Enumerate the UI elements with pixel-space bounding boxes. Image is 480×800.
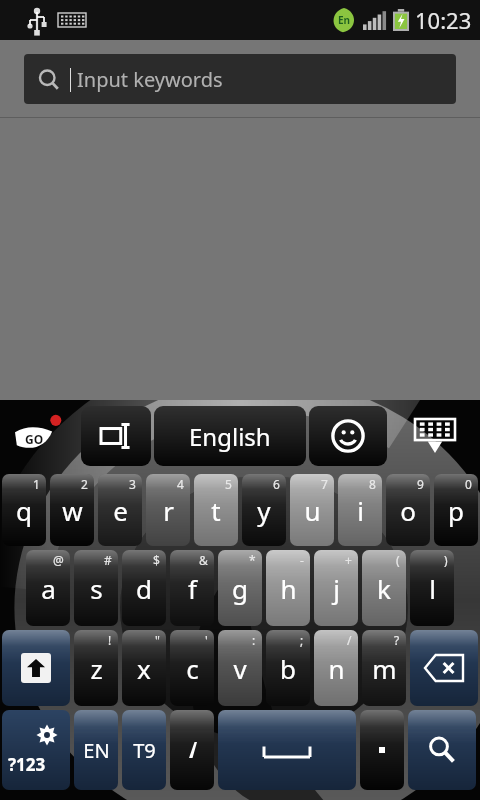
button[interactable]: 6 bbox=[242, 474, 286, 546]
staticText: c bbox=[186, 651, 199, 686]
staticText: " bbox=[155, 632, 160, 648]
staticText: i bbox=[357, 493, 364, 528]
staticText: d bbox=[136, 571, 152, 606]
staticText: e bbox=[113, 493, 128, 528]
staticText: 1 bbox=[33, 476, 40, 492]
staticText: 9 bbox=[417, 476, 424, 492]
button[interactable]: ? bbox=[362, 630, 406, 706]
staticText: 4 bbox=[177, 476, 184, 492]
staticText: 5 bbox=[225, 476, 232, 492]
staticText: ) bbox=[444, 552, 448, 568]
button[interactable]: Search bbox=[408, 710, 476, 790]
button[interactable]: GO keyboard bbox=[0, 400, 78, 472]
staticText: m bbox=[372, 651, 397, 686]
button[interactable]: 1 bbox=[2, 474, 46, 546]
button[interactable]: English bbox=[154, 406, 306, 466]
staticText: $ bbox=[153, 552, 160, 568]
button[interactable]: 8 bbox=[338, 474, 382, 546]
button[interactable]: ' bbox=[170, 630, 214, 706]
button[interactable]: Shift bbox=[2, 630, 70, 706]
button[interactable]: @ bbox=[26, 550, 70, 626]
button[interactable]: $ bbox=[122, 550, 166, 626]
staticText: u bbox=[304, 493, 321, 528]
staticText: English bbox=[189, 420, 271, 453]
staticText: 6 bbox=[273, 476, 280, 492]
button[interactable]: EN bbox=[74, 710, 118, 790]
staticText: ; bbox=[300, 632, 304, 648]
button[interactable]: 4 bbox=[146, 474, 190, 546]
staticText: * bbox=[249, 552, 256, 568]
staticText: ? bbox=[394, 632, 400, 648]
staticText: f bbox=[188, 571, 197, 606]
button[interactable]: # bbox=[74, 550, 118, 626]
button[interactable]: Space bbox=[218, 710, 356, 790]
staticText: y bbox=[257, 493, 271, 528]
staticText: Input keywords bbox=[77, 66, 223, 93]
button[interactable]: Input keywords bbox=[24, 54, 456, 104]
button[interactable]: 9 bbox=[386, 474, 430, 546]
staticText: k bbox=[377, 571, 391, 606]
button[interactable]: / bbox=[314, 630, 358, 706]
staticText: q bbox=[16, 493, 32, 528]
button[interactable]: Emoji bbox=[309, 406, 387, 466]
staticText: : bbox=[252, 632, 256, 648]
button[interactable]: + bbox=[314, 550, 358, 626]
staticText: ?123 bbox=[8, 753, 46, 776]
staticText: 3 bbox=[129, 476, 136, 492]
button[interactable]: Layout bbox=[81, 406, 151, 466]
button[interactable]: ) bbox=[410, 550, 454, 626]
button[interactable]: 3 bbox=[98, 474, 142, 546]
button[interactable]: - bbox=[266, 550, 310, 626]
button[interactable]: ?123 bbox=[2, 710, 70, 790]
staticText: h bbox=[280, 571, 297, 606]
staticText: o bbox=[400, 493, 416, 528]
button[interactable]: : bbox=[218, 630, 262, 706]
button[interactable]: Period bbox=[360, 710, 404, 790]
staticText: p bbox=[448, 493, 464, 528]
staticText: 2 bbox=[81, 476, 88, 492]
button[interactable]: ; bbox=[266, 630, 310, 706]
staticText: ' bbox=[205, 632, 208, 648]
staticText: l bbox=[429, 571, 436, 606]
button[interactable]: Comma bbox=[170, 710, 214, 790]
button[interactable]: 0 bbox=[434, 474, 478, 546]
staticText: 10:23 bbox=[415, 5, 472, 35]
button[interactable]: * bbox=[218, 550, 262, 626]
button[interactable]: ( bbox=[362, 550, 406, 626]
staticText: b bbox=[280, 651, 296, 686]
button[interactable]: Hide keyboard bbox=[390, 400, 480, 472]
staticText: @ bbox=[53, 552, 64, 568]
button[interactable]: Delete bbox=[410, 630, 478, 706]
staticText: GO bbox=[25, 431, 44, 447]
staticText: r bbox=[163, 493, 174, 528]
staticText: z bbox=[90, 651, 103, 686]
button[interactable]: 7 bbox=[290, 474, 334, 546]
staticText: w bbox=[62, 493, 83, 528]
staticText: j bbox=[333, 571, 340, 606]
staticText: v bbox=[233, 651, 247, 686]
button[interactable]: T9 bbox=[122, 710, 166, 790]
staticText: - bbox=[300, 552, 304, 568]
staticText: / bbox=[347, 632, 352, 648]
staticText: ! bbox=[108, 632, 112, 648]
staticText: g bbox=[232, 571, 248, 606]
staticText: ( bbox=[396, 552, 400, 568]
staticText: & bbox=[199, 552, 208, 568]
staticText: s bbox=[90, 571, 103, 606]
button[interactable]: " bbox=[122, 630, 166, 706]
staticText: 7 bbox=[321, 476, 328, 492]
staticText: 0 bbox=[465, 476, 472, 492]
staticText: T9 bbox=[133, 737, 156, 764]
staticText: 8 bbox=[369, 476, 376, 492]
staticText: # bbox=[104, 552, 112, 568]
button[interactable]: ! bbox=[74, 630, 118, 706]
button[interactable]: 5 bbox=[194, 474, 238, 546]
staticText: t bbox=[211, 493, 221, 528]
staticText: a bbox=[41, 571, 56, 606]
button[interactable]: & bbox=[170, 550, 214, 626]
staticText: x bbox=[137, 651, 151, 686]
button[interactable]: 2 bbox=[50, 474, 94, 546]
staticText: n bbox=[328, 651, 345, 686]
staticText: En bbox=[338, 13, 351, 27]
staticText: EN bbox=[83, 737, 110, 764]
